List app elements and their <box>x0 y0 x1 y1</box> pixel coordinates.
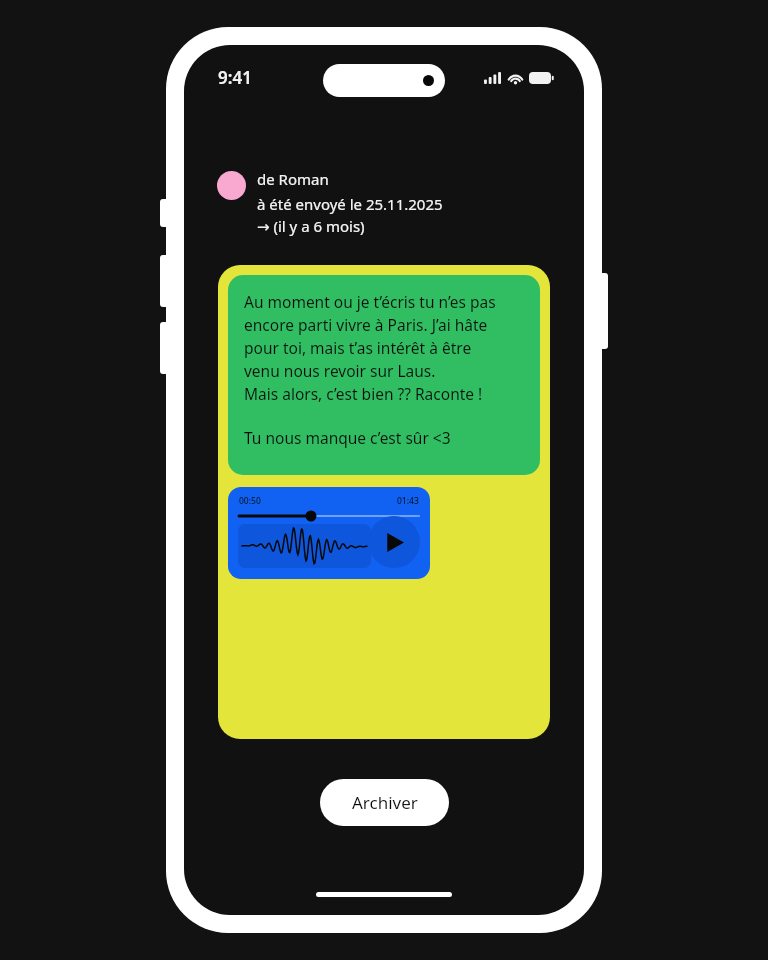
button[interactable]: Archiver <box>320 779 449 826</box>
staticText: Au moment ou je t’écris tu n’es pas enco… <box>244 291 496 405</box>
staticText: → (il y a 6 mois) <box>257 216 365 236</box>
staticText: à été envoyé le 25.11.2025 <box>257 194 443 214</box>
staticText: 9:41 <box>218 66 252 89</box>
staticText: 01:43 <box>397 495 419 507</box>
button[interactable]: Au moment ou je t’écris tu n’es pas enco… <box>218 265 550 739</box>
staticText: Tu nous manque c’est sûr <3 <box>244 427 451 448</box>
staticText: Archiver <box>352 791 418 814</box>
button[interactable]: Lecteur audio <box>228 487 430 579</box>
staticText: de Roman <box>257 169 329 189</box>
button[interactable]: Lire <box>368 516 420 568</box>
staticText: 00:50 <box>239 495 261 507</box>
